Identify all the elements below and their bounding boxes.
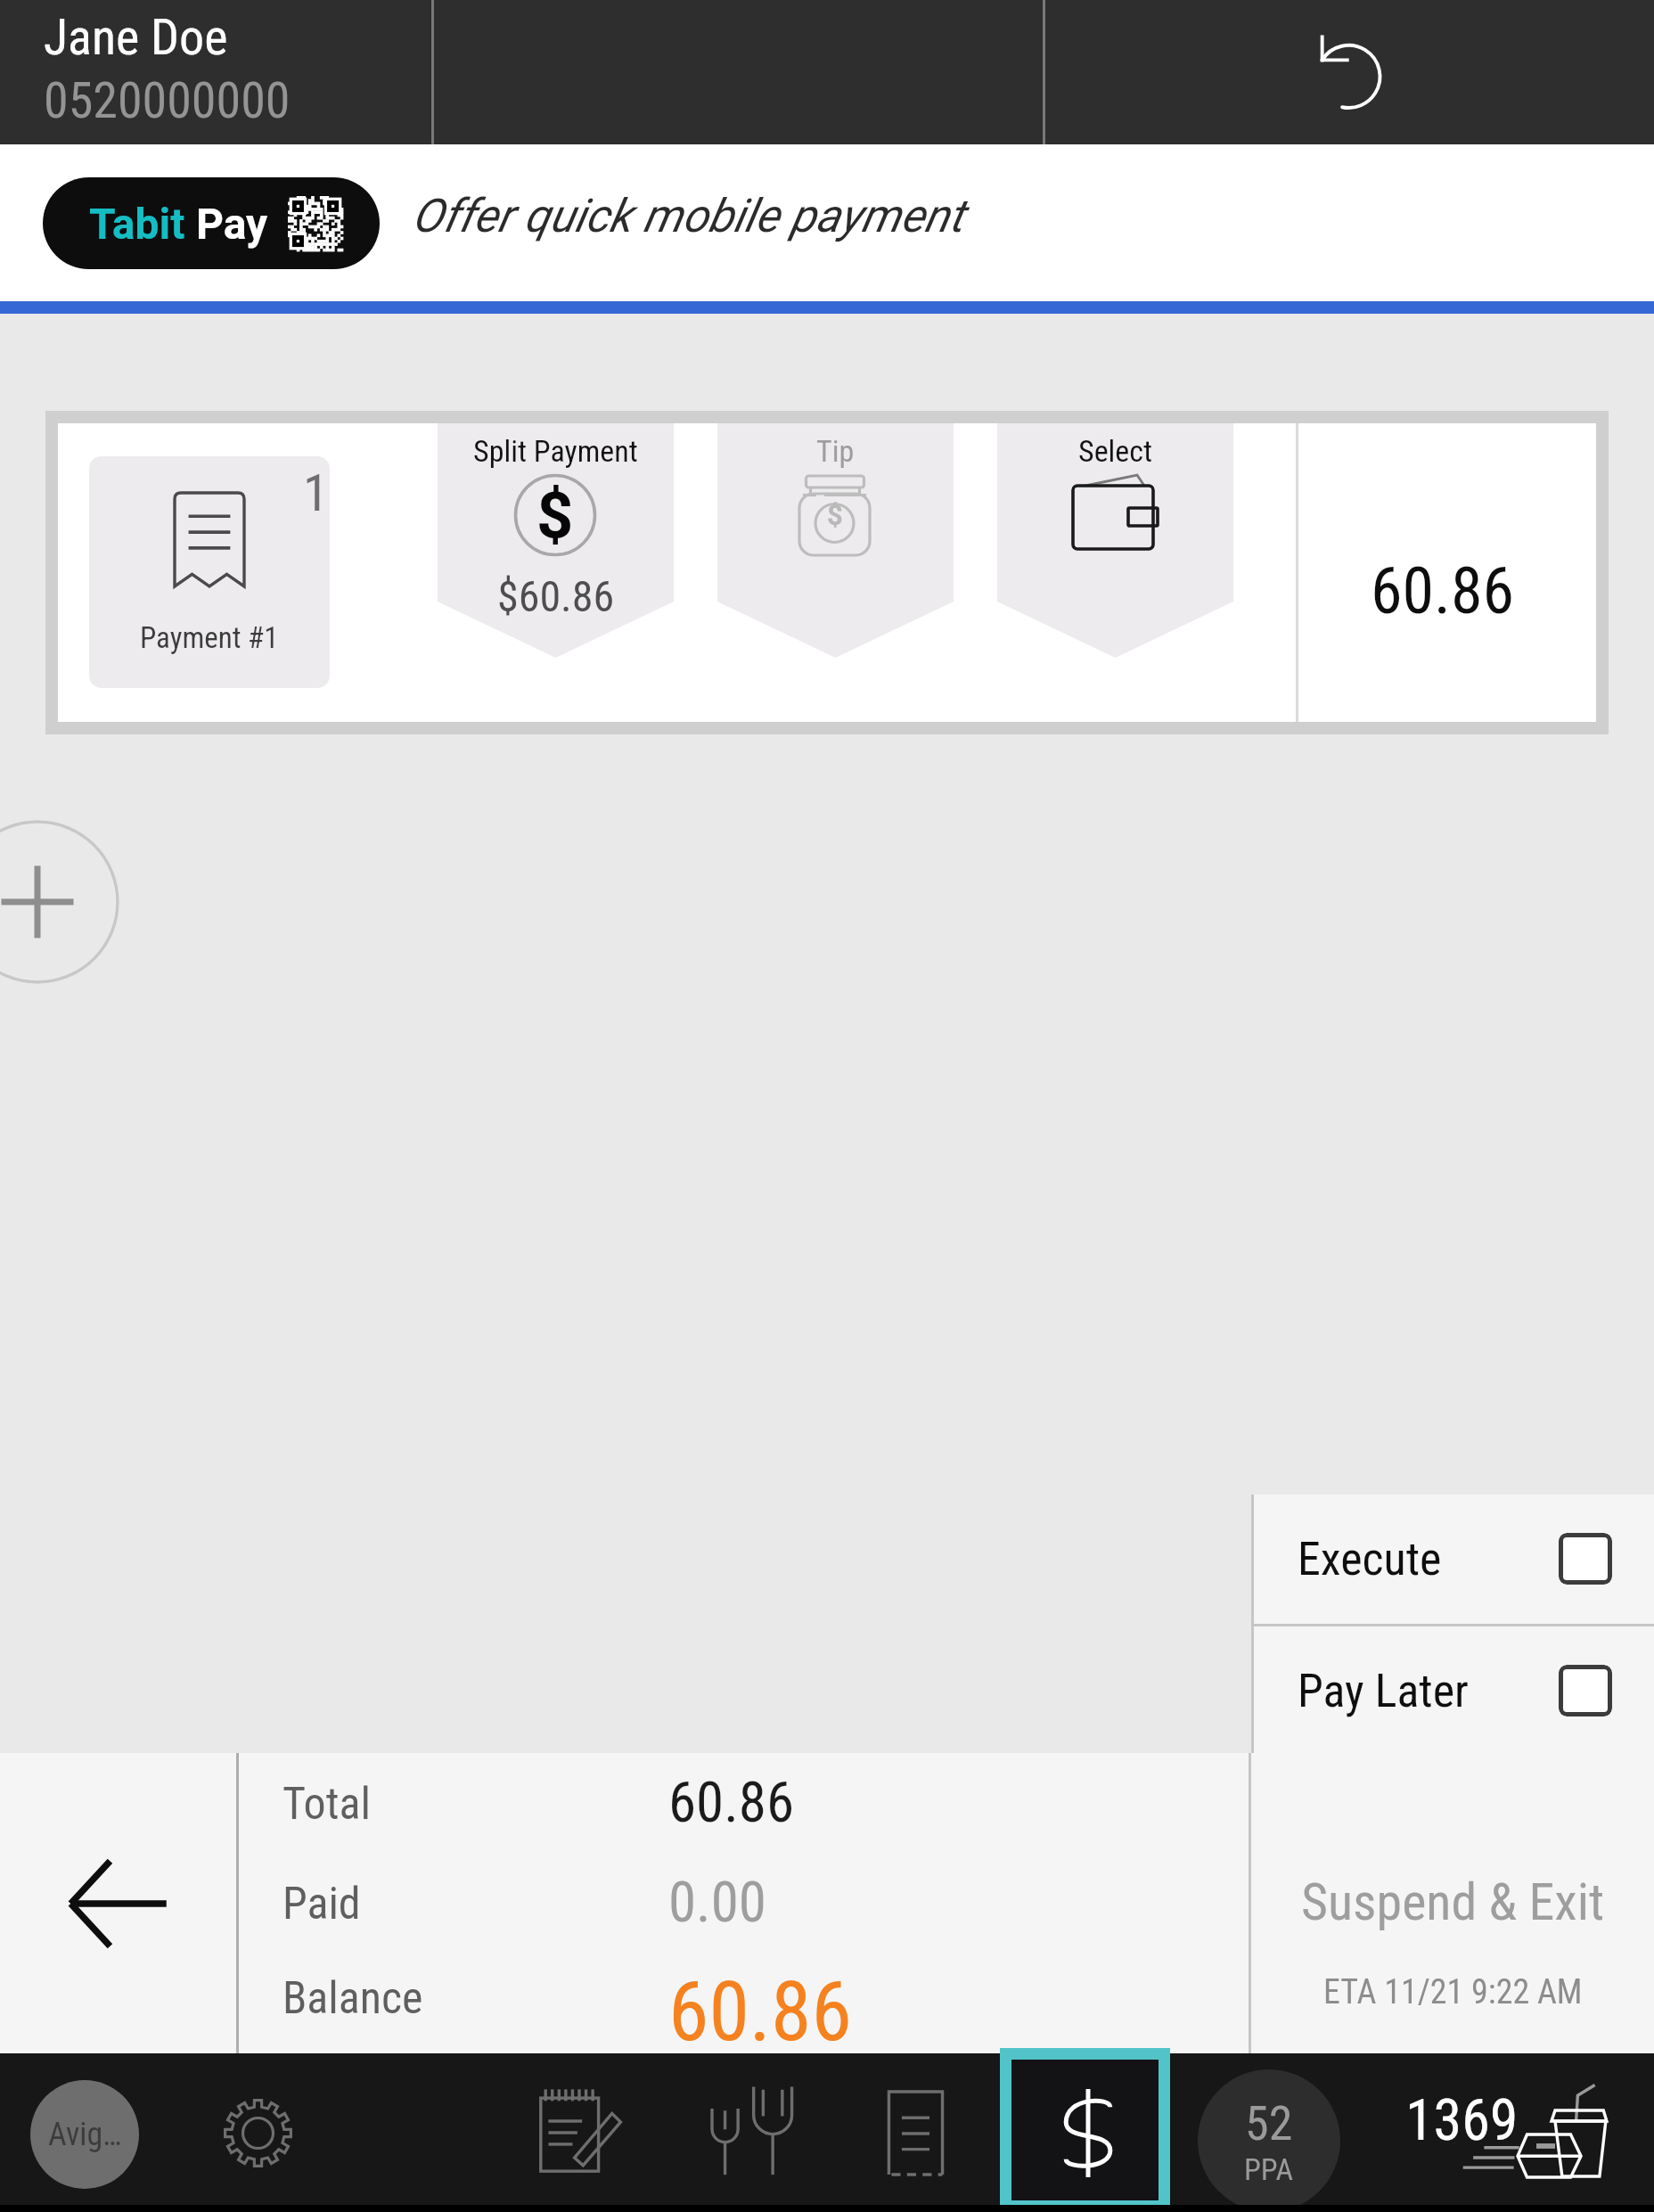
button[interactable]: 1 [89, 456, 330, 688]
staticText: 0.00 [668, 1870, 766, 1936]
button[interactable]: Settings [200, 2053, 315, 2212]
staticText: Execute [1298, 1532, 1442, 1586]
staticText: $60.86 [497, 571, 615, 621]
button[interactable]: Orders [1386, 2053, 1654, 2212]
button[interactable]: Dining [701, 2053, 817, 2212]
staticText: Pay [196, 199, 268, 249]
staticText: 52 [1245, 2095, 1293, 2151]
staticText: Jane Doe [44, 8, 228, 67]
staticText: Pay Later [1298, 1664, 1469, 1718]
button[interactable]: Back [0, 1753, 236, 2053]
staticText: 1369 [1405, 2087, 1519, 2154]
staticText: PPA [1244, 2151, 1294, 2187]
button[interactable]: Split Payment [438, 423, 674, 658]
button[interactable]: Add payment [0, 820, 119, 984]
button[interactable]: Payment [1011, 2060, 1159, 2200]
staticText: 0520000000 [44, 71, 291, 130]
staticText: ETA 11/21 9:22 AM [1323, 1972, 1583, 2012]
staticText: Select [1078, 433, 1153, 469]
staticText: 1 [303, 463, 329, 523]
button[interactable]: 52 [1198, 2069, 1340, 2212]
button[interactable]: Tip [717, 423, 954, 658]
staticText: $ [827, 499, 843, 531]
button[interactable]: Suspend & Exit [1251, 1753, 1654, 2053]
staticText: Total [282, 1778, 371, 1831]
staticText: Payment #1 [140, 620, 279, 655]
button[interactable]: Pay Later [1251, 1626, 1654, 1755]
button[interactable]: Execute [1251, 1495, 1654, 1623]
staticText: Paid [282, 1878, 361, 1930]
staticText: Split Payment [473, 433, 638, 469]
button[interactable]: Avig… [30, 2080, 139, 2189]
staticText: Tabit [89, 199, 185, 249]
button[interactable]: Jane Doe [0, 0, 431, 144]
staticText: Balance [282, 1972, 423, 2025]
staticText: Avig… [48, 2116, 122, 2153]
staticText: 60.86 [1371, 553, 1515, 628]
button[interactable]: Select [997, 423, 1233, 658]
staticText: Offer quick mobile payment [412, 189, 964, 243]
button[interactable]: Undo [1045, 0, 1654, 144]
staticText: $ [536, 478, 574, 553]
button[interactable]: Bill [857, 2053, 973, 2212]
staticText: Tip [816, 433, 855, 469]
button[interactable]: Tabit [43, 177, 380, 269]
staticText: Suspend & Exit [1301, 1872, 1605, 1932]
staticText: 60.86 [668, 1964, 852, 2060]
staticText: 60.86 [668, 1770, 795, 1836]
button[interactable]: Notes [521, 2053, 637, 2212]
